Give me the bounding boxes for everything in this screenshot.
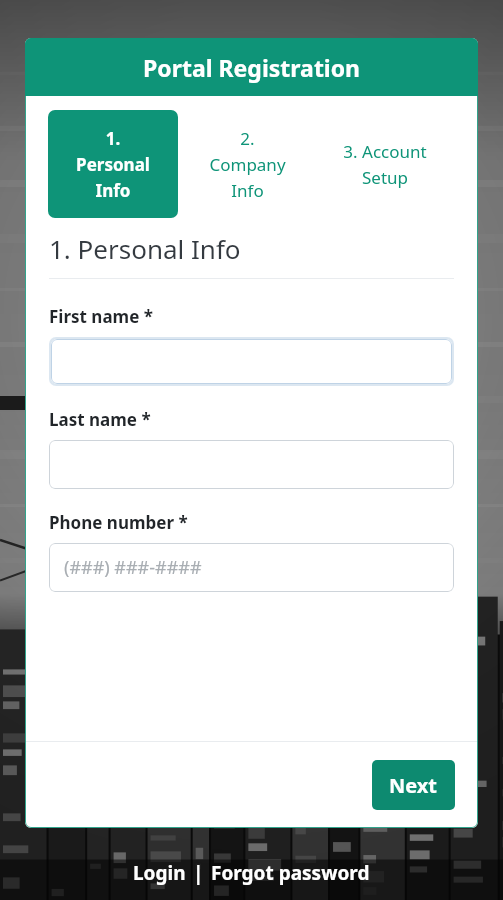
staticText: 2. Company Info [209, 127, 286, 202]
staticText: (###) ###-#### [64, 555, 202, 580]
button[interactable]: (###) ###-#### [49, 543, 454, 592]
staticText: 1. Personal Info [76, 127, 150, 202]
button[interactable]: 1. Personal Info [48, 110, 178, 218]
button[interactable]: Next [372, 760, 455, 810]
button[interactable]: 3. Account Setup [316, 110, 454, 218]
staticText: Portal Registration [143, 52, 361, 83]
staticText: First name * [49, 305, 153, 328]
button[interactable]: Login [131, 860, 188, 886]
button[interactable] [49, 440, 454, 489]
staticText: Login [133, 860, 186, 886]
staticText: | [188, 860, 209, 886]
staticText: 1. Personal Info [49, 231, 241, 266]
staticText: Last name * [49, 408, 151, 431]
staticText: Phone number * [49, 511, 188, 534]
staticText: 3. Account Setup [343, 140, 427, 189]
staticText: Forgot password [211, 860, 370, 886]
button[interactable] [51, 339, 452, 384]
button[interactable]: Forgot password [209, 860, 372, 886]
button[interactable]: 2. Company Info [178, 110, 316, 218]
staticText: Next [389, 772, 438, 799]
